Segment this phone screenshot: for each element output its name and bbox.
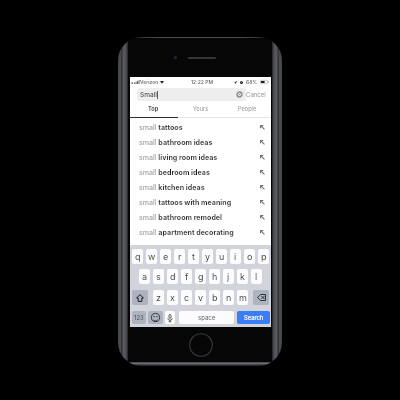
staticText: d — [170, 271, 176, 282]
button[interactable]: Dictation — [165, 311, 175, 324]
button[interactable]: e — [160, 249, 171, 264]
button[interactable]: z — [153, 290, 164, 305]
button[interactable]: small tattoos with meaning — [130, 195, 271, 210]
staticText: k — [240, 271, 245, 282]
staticText: small bathroom ideas — [139, 138, 213, 147]
staticText: z — [156, 292, 161, 303]
staticText: Search — [244, 314, 264, 321]
button[interactable]: a — [139, 269, 150, 284]
staticText: o — [247, 251, 253, 262]
staticText: a — [142, 271, 148, 282]
button[interactable]: y — [202, 249, 213, 264]
button[interactable]: Backspace — [253, 290, 269, 305]
staticText: f — [185, 271, 189, 282]
staticText: i — [234, 251, 237, 262]
button[interactable]: Shift — [132, 290, 148, 305]
staticText: Cancel — [246, 91, 266, 98]
staticText: small bedroom ideas — [139, 168, 210, 177]
button[interactable]: space — [179, 311, 234, 324]
staticText: l — [255, 271, 258, 282]
button[interactable]: Yours — [177, 102, 224, 118]
staticText: m — [239, 292, 247, 303]
staticText: 68% — [246, 79, 258, 85]
button[interactable]: small bedroom ideas — [130, 165, 271, 180]
button[interactable]: small apartment decorating — [130, 225, 271, 240]
button[interactable]: Search — [237, 311, 270, 324]
button[interactable]: f — [181, 269, 192, 284]
staticText: p — [261, 251, 267, 262]
button[interactable]: m — [237, 290, 248, 305]
staticText: small kitchen ideas — [139, 183, 205, 192]
staticText: small bathroom remodel — [139, 213, 223, 222]
staticText: r — [178, 251, 182, 262]
staticText: small tattoos with meaning — [139, 198, 232, 207]
button[interactable]: w — [146, 249, 157, 264]
staticText: j — [227, 271, 230, 282]
button[interactable]: n — [223, 290, 234, 305]
button[interactable]: q — [132, 249, 143, 264]
button[interactable]: x — [167, 290, 178, 305]
staticText: Verizon — [140, 79, 159, 85]
button[interactable]: small bathroom ideas — [130, 135, 271, 150]
button[interactable]: c — [181, 290, 192, 305]
button[interactable]: small bathroom remodel — [130, 210, 271, 225]
button[interactable]: k — [237, 269, 248, 284]
button[interactable]: Cancel — [246, 91, 266, 98]
staticText: g — [198, 271, 204, 282]
button[interactable]: r — [174, 249, 185, 264]
staticText: s — [156, 271, 161, 282]
other: Shift — [136, 294, 144, 302]
button[interactable]: small kitchen ideas — [130, 180, 271, 195]
staticText: 12:22 PM — [191, 79, 213, 85]
button[interactable]: People — [224, 102, 271, 118]
button[interactable]: d — [167, 269, 178, 284]
staticText: Top — [148, 106, 159, 113]
button[interactable]: small tattoos — [130, 120, 271, 135]
staticText: Yours — [193, 106, 209, 113]
button[interactable]: u — [216, 249, 227, 264]
other: Clear search — [237, 92, 242, 97]
staticText: small tattoos — [139, 123, 183, 132]
staticText: e — [163, 251, 169, 262]
button[interactable]: l — [251, 269, 262, 284]
button[interactable]: g — [195, 269, 206, 284]
button[interactable]: p — [258, 249, 269, 264]
staticText: small living room ideas — [139, 153, 218, 162]
staticText: t — [192, 251, 195, 262]
button[interactable]: small living room ideas — [130, 150, 271, 165]
staticText: h — [212, 271, 218, 282]
staticText: y — [205, 251, 211, 262]
button[interactable]: Top — [130, 102, 177, 118]
button[interactable]: Small — [137, 88, 246, 101]
other: Backspace — [257, 294, 266, 301]
staticText: b — [212, 292, 218, 303]
staticText: u — [219, 251, 225, 262]
staticText: w — [148, 251, 156, 262]
button[interactable]: s — [153, 269, 164, 284]
staticText: small apartment decorating — [139, 228, 234, 237]
staticText: 123 — [134, 314, 144, 321]
button[interactable]: o — [244, 249, 255, 264]
staticText: Small — [140, 91, 157, 99]
button[interactable]: 123 — [132, 311, 146, 324]
staticText: v — [198, 292, 204, 303]
button[interactable]: t — [188, 249, 199, 264]
button[interactable]: i — [230, 249, 241, 264]
staticText: c — [184, 292, 190, 303]
other: Dictation — [167, 314, 173, 322]
staticText: space — [198, 314, 216, 321]
staticText: n — [226, 292, 232, 303]
button[interactable]: h — [209, 269, 220, 284]
button[interactable]: b — [209, 290, 220, 305]
button[interactable]: Emoji keyboard — [148, 311, 163, 324]
staticText: q — [135, 251, 141, 262]
button[interactable]: v — [195, 290, 206, 305]
button[interactable]: j — [223, 269, 234, 284]
staticText: x — [170, 292, 175, 303]
other: Emoji keyboard — [151, 313, 160, 322]
staticText: People — [238, 106, 257, 113]
